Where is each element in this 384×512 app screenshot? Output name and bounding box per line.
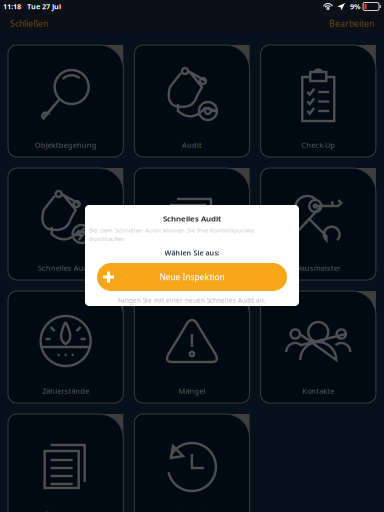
staticText: Kontakte bbox=[302, 386, 334, 396]
staticText: Zählerstände bbox=[42, 386, 89, 396]
button[interactable]: Dokumente bbox=[8, 414, 123, 512]
staticText: Audit bbox=[182, 140, 202, 150]
staticText: Schnelles Audit bbox=[163, 213, 221, 224]
button[interactable]: Formulare bbox=[134, 168, 250, 280]
staticText: Fangen Sie mit einer neuen Schnelles Aud… bbox=[118, 296, 266, 304]
staticText: Tue 27 Jul bbox=[27, 1, 61, 11]
staticText: Bei dem Schnellen Audit können Sie Ihre … bbox=[89, 226, 254, 243]
button[interactable]: Audit bbox=[134, 45, 250, 157]
staticText: Neue Inspektion bbox=[159, 271, 224, 283]
button[interactable]: Neue Inspektion bbox=[97, 263, 287, 291]
button[interactable]: Kontakte bbox=[261, 291, 376, 403]
button[interactable]: Verlauf bbox=[134, 414, 250, 512]
button[interactable]: Schließen bbox=[10, 14, 70, 33]
staticText: Hausmeister bbox=[296, 263, 341, 273]
button[interactable]: Zählerstände bbox=[8, 291, 123, 403]
button[interactable]: Objektbegehung bbox=[8, 45, 123, 157]
button[interactable]: Bearbeiten bbox=[314, 14, 374, 33]
button[interactable]: Hausmeister bbox=[261, 168, 376, 280]
staticText: 9% bbox=[350, 1, 361, 11]
staticText: Verlauf bbox=[179, 509, 204, 512]
staticText: Bearbeiten bbox=[329, 18, 374, 29]
staticText: Mängel bbox=[178, 386, 205, 396]
staticText: Objektbegehung bbox=[35, 140, 97, 150]
staticText: 11:18 bbox=[3, 1, 21, 11]
staticText: Check-Up bbox=[301, 140, 335, 150]
button[interactable]: Mängel bbox=[134, 291, 250, 403]
button[interactable]: Schnelles Audit bbox=[8, 168, 123, 280]
staticText: Wählen Sie aus: bbox=[164, 248, 219, 258]
staticText: Schließen bbox=[10, 18, 48, 29]
staticText: Dokumente bbox=[45, 509, 86, 512]
staticText: Schnelles Audit bbox=[38, 263, 94, 273]
button[interactable]: Check-Up bbox=[261, 45, 376, 157]
